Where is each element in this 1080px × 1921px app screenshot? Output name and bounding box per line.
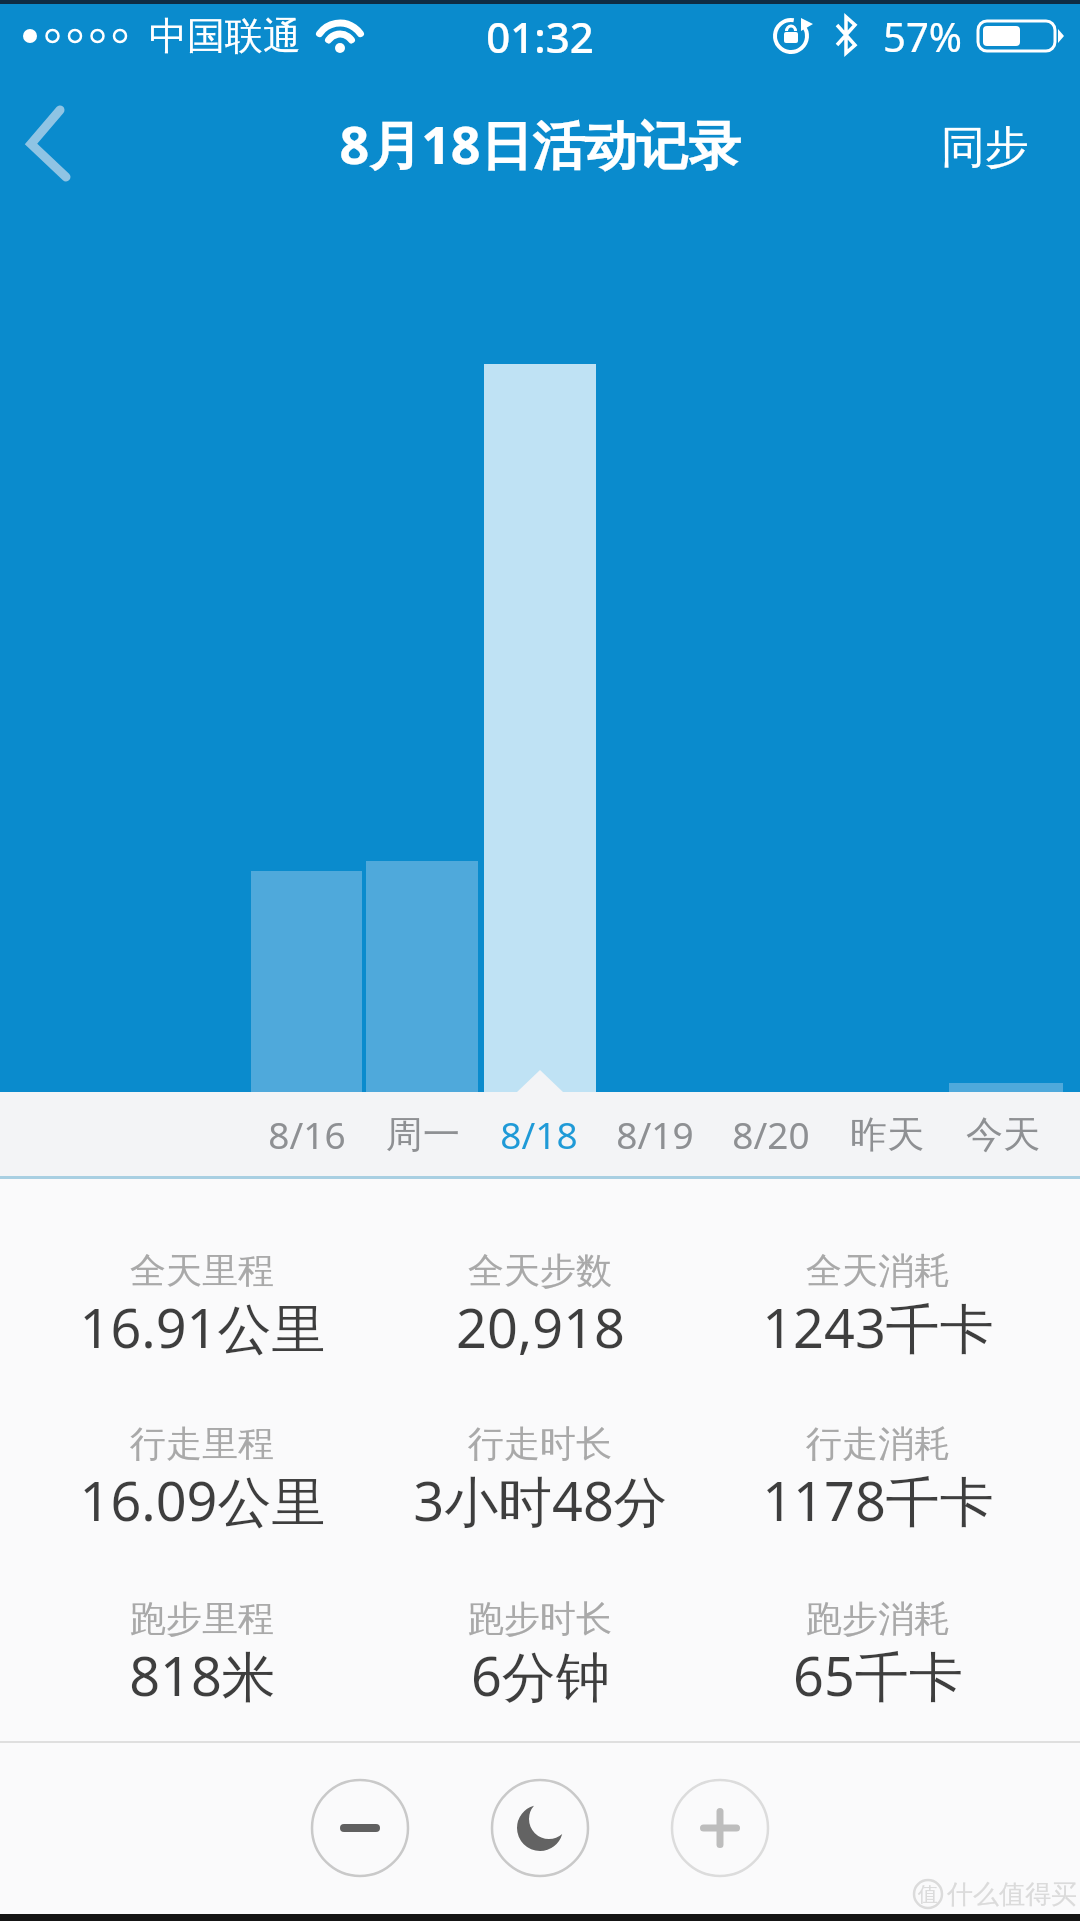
staticText: 中国联通	[149, 12, 301, 60]
staticText: 行走消耗	[806, 1421, 950, 1466]
button[interactable]: 8/20	[471, 1084, 1071, 1184]
staticText: 1243千卡	[762, 1290, 994, 1364]
button[interactable]: 8/18	[239, 1084, 839, 1184]
staticText: 全天里程	[130, 1248, 274, 1293]
staticText: 全天步数	[468, 1248, 612, 1293]
staticText: 8/20	[732, 1109, 810, 1159]
staticText: 行走里程	[130, 1421, 274, 1466]
staticText: 65千卡	[793, 1638, 963, 1712]
staticText: 跑步消耗	[806, 1596, 950, 1641]
staticText: 01:32	[486, 8, 594, 65]
staticText: 行走时长	[468, 1421, 612, 1466]
staticText: 3小时48分	[413, 1463, 668, 1537]
staticText: 8/16	[268, 1109, 346, 1159]
button[interactable]: 今天	[703, 1084, 1080, 1184]
staticText: 8月18日活动记录	[339, 108, 741, 179]
button[interactable]: 昨天	[587, 1084, 1080, 1184]
staticText: 全天消耗	[806, 1248, 950, 1293]
staticText: 8/19	[616, 1109, 694, 1159]
staticText: 16.91公里	[79, 1290, 326, 1364]
button[interactable]	[10, 98, 90, 192]
staticText: 57%	[883, 9, 962, 63]
staticText: 16.09公里	[79, 1463, 326, 1537]
button[interactable]: 同步	[685, 97, 1080, 197]
button[interactable]: 周一	[123, 1084, 723, 1184]
button[interactable]: 8/16	[7, 1084, 607, 1184]
staticText: 20,918	[456, 1290, 625, 1364]
staticText: 今天	[966, 1111, 1040, 1158]
staticText: 8/18	[500, 1109, 578, 1159]
button[interactable]	[671, 1779, 769, 1877]
staticText: 跑步里程	[130, 1596, 274, 1641]
staticText: 什么值得买	[947, 1878, 1077, 1911]
staticText: 值	[918, 1882, 938, 1907]
staticText: 818米	[129, 1638, 276, 1712]
button[interactable]: 8/19	[355, 1084, 955, 1184]
button[interactable]	[311, 1779, 409, 1877]
staticText: 跑步时长	[468, 1596, 612, 1641]
staticText: 昨天	[850, 1111, 924, 1158]
staticText: 同步	[941, 120, 1029, 175]
button[interactable]	[491, 1779, 589, 1877]
staticText: 周一	[386, 1111, 460, 1158]
staticText: 6分钟	[471, 1638, 610, 1712]
staticText: 1178千卡	[762, 1463, 994, 1537]
